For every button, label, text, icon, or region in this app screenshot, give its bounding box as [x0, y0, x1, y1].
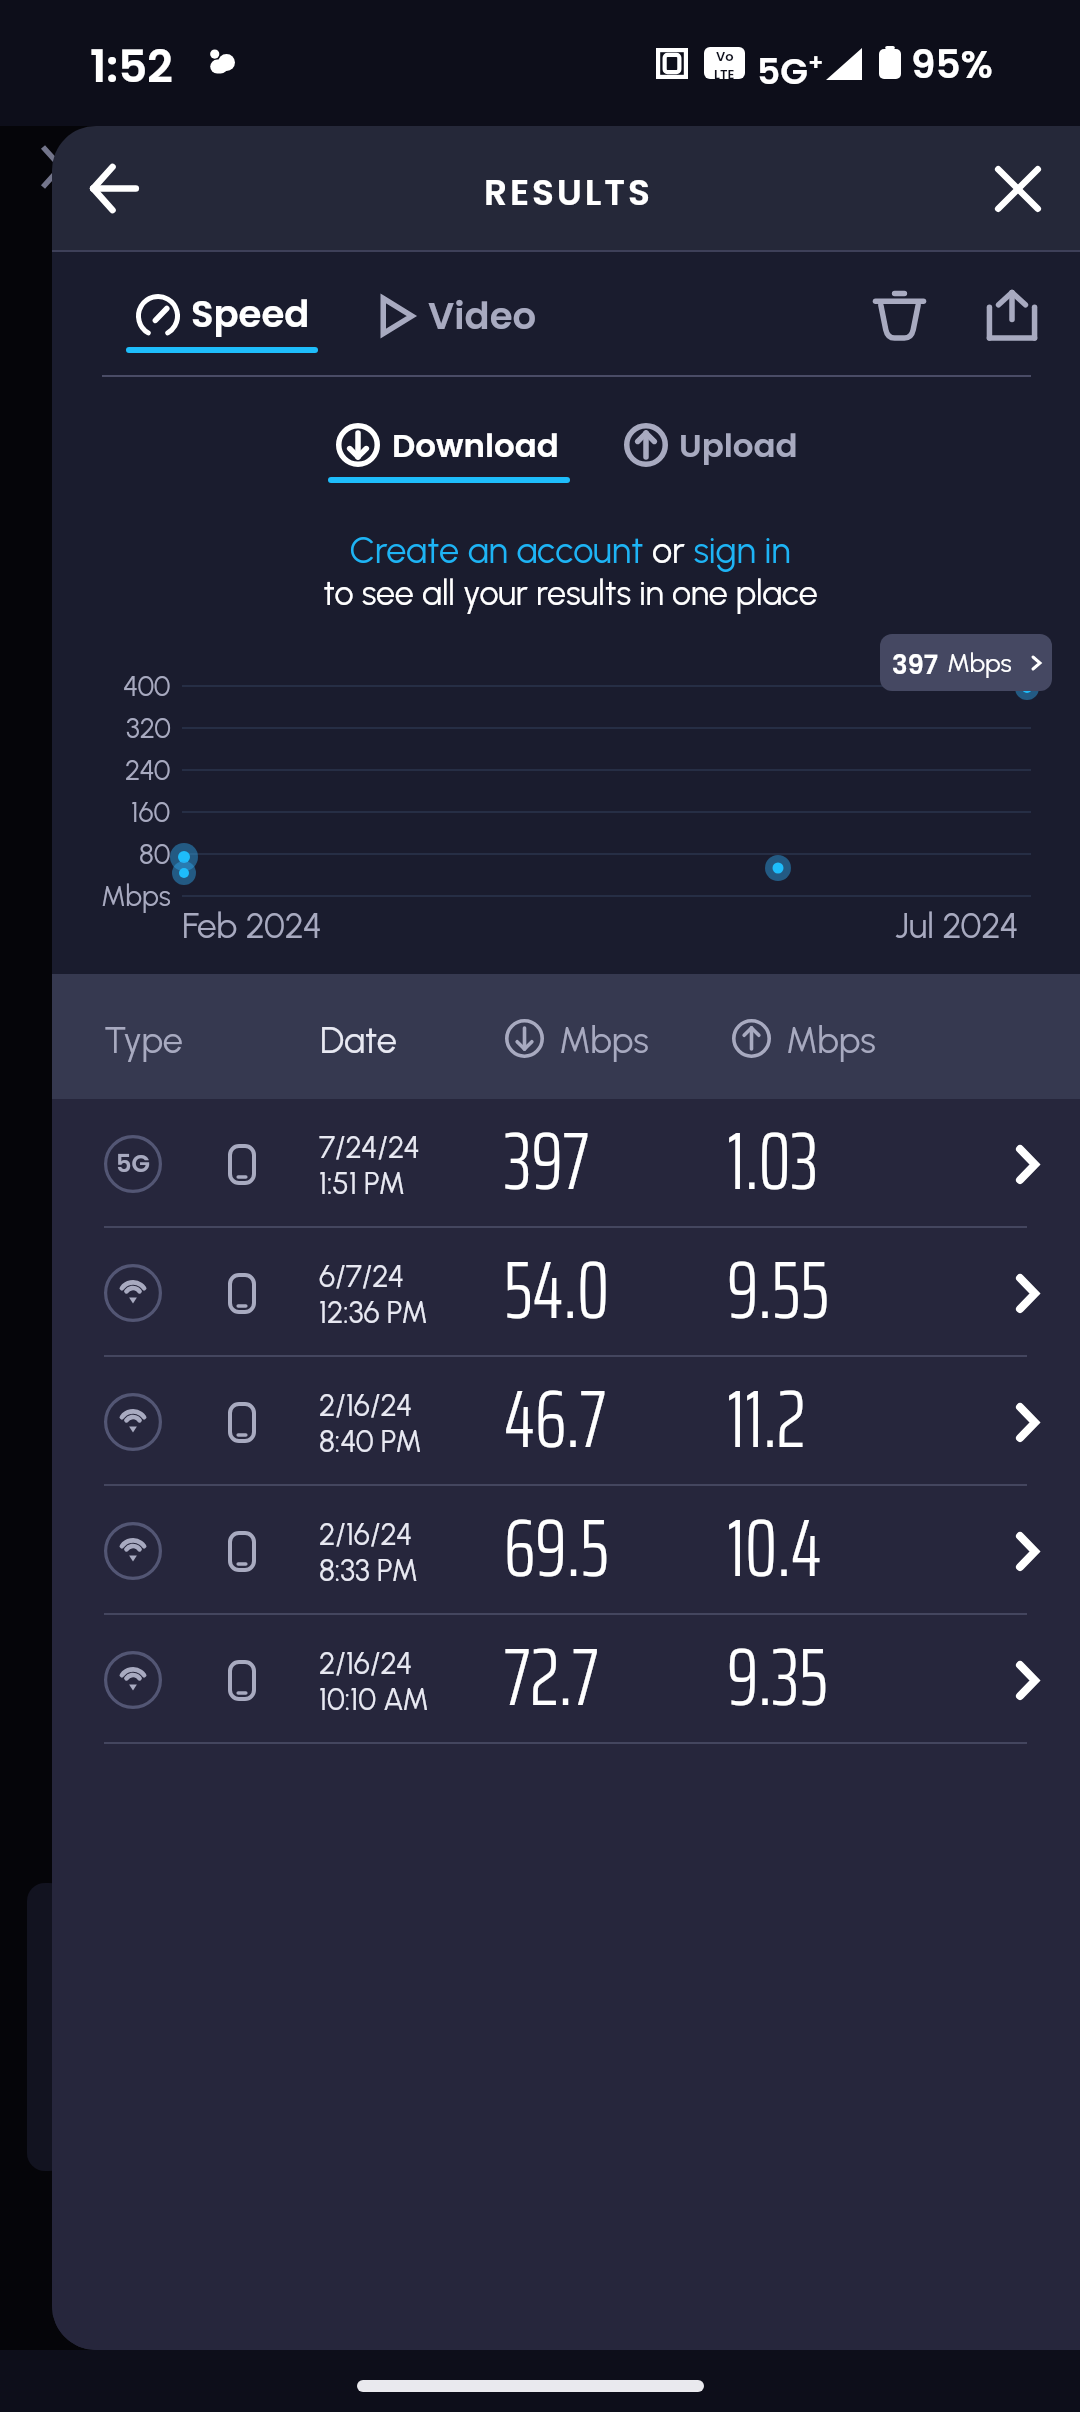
staticText: 69.5: [504, 1484, 609, 1611]
button[interactable]: 2/16/24: [52, 1357, 1080, 1486]
staticText: Jul 2024: [895, 905, 1019, 947]
staticText: 9.35: [727, 1613, 828, 1740]
staticText: Speed: [191, 288, 310, 340]
staticText: Mbps: [786, 1019, 876, 1062]
staticText: 10:10 AM: [319, 1681, 429, 1717]
staticText: Upload: [679, 423, 798, 469]
button[interactable]: Share: [964, 267, 1060, 363]
button[interactable]: Delete: [851, 267, 947, 363]
staticText: Date: [320, 1019, 397, 1062]
staticText: 400: [123, 669, 171, 703]
staticText: Feb 2024: [182, 905, 322, 947]
button[interactable]: Video: [372, 290, 538, 352]
staticText: 72.7: [504, 1613, 599, 1740]
staticText: 1:51 PM: [319, 1165, 406, 1201]
staticText: 8:33 PM: [319, 1552, 418, 1588]
button[interactable]: 5G: [52, 1099, 1080, 1228]
staticText: Mbps: [947, 647, 1012, 678]
button[interactable]: Back: [67, 141, 162, 236]
staticText: 11.2: [727, 1355, 806, 1482]
button[interactable]: 6/7/24: [52, 1228, 1080, 1357]
staticText: 1.03: [727, 1097, 819, 1224]
staticText: 7/24/24: [319, 1129, 420, 1165]
staticText: 12:36 PM: [319, 1294, 428, 1330]
staticText: 8:40 PM: [319, 1423, 422, 1459]
button[interactable]: Speed: [126, 286, 318, 358]
staticText: 1:52: [90, 35, 173, 98]
staticText: RESULTS: [484, 167, 653, 217]
staticText: 6/7/24: [319, 1258, 405, 1294]
staticText: 2/16/24: [319, 1516, 413, 1552]
button[interactable]: Download: [330, 418, 562, 480]
staticText: 95%: [911, 37, 993, 92]
staticText: 240: [125, 753, 171, 787]
button[interactable]: Create an account or sign in: [349, 529, 791, 572]
staticText: 160: [131, 795, 171, 829]
staticText: 5G: [116, 1147, 150, 1181]
button[interactable]: 2/16/24: [52, 1615, 1080, 1744]
staticText: Download: [392, 423, 559, 469]
staticText: 2/16/24: [319, 1645, 413, 1681]
staticText: 54.0: [504, 1226, 610, 1353]
staticText: 9.55: [727, 1226, 830, 1353]
staticText: 10.4: [727, 1484, 822, 1611]
staticText: 397: [892, 647, 939, 683]
staticText: 320: [126, 711, 171, 745]
button[interactable]: Close: [970, 141, 1065, 236]
staticText: 80: [139, 837, 171, 871]
staticText: LTE: [714, 65, 735, 79]
button[interactable]: Upload: [618, 418, 814, 480]
staticText: Type: [104, 1019, 183, 1062]
staticText: 397: [504, 1097, 589, 1224]
staticText: Mbps: [559, 1019, 649, 1062]
staticText: Mbps: [101, 879, 171, 913]
staticText: 5G: [757, 46, 808, 96]
button[interactable]: 397: [880, 634, 1052, 691]
staticText: to see all your results in one place: [323, 573, 818, 614]
staticText: Vo: [716, 47, 734, 65]
staticText: +: [808, 46, 824, 78]
staticText: Video: [428, 290, 537, 342]
staticText: 2/16/24: [319, 1387, 413, 1423]
button[interactable]: 2/16/24: [52, 1486, 1080, 1615]
staticText: 46.7: [504, 1355, 607, 1482]
